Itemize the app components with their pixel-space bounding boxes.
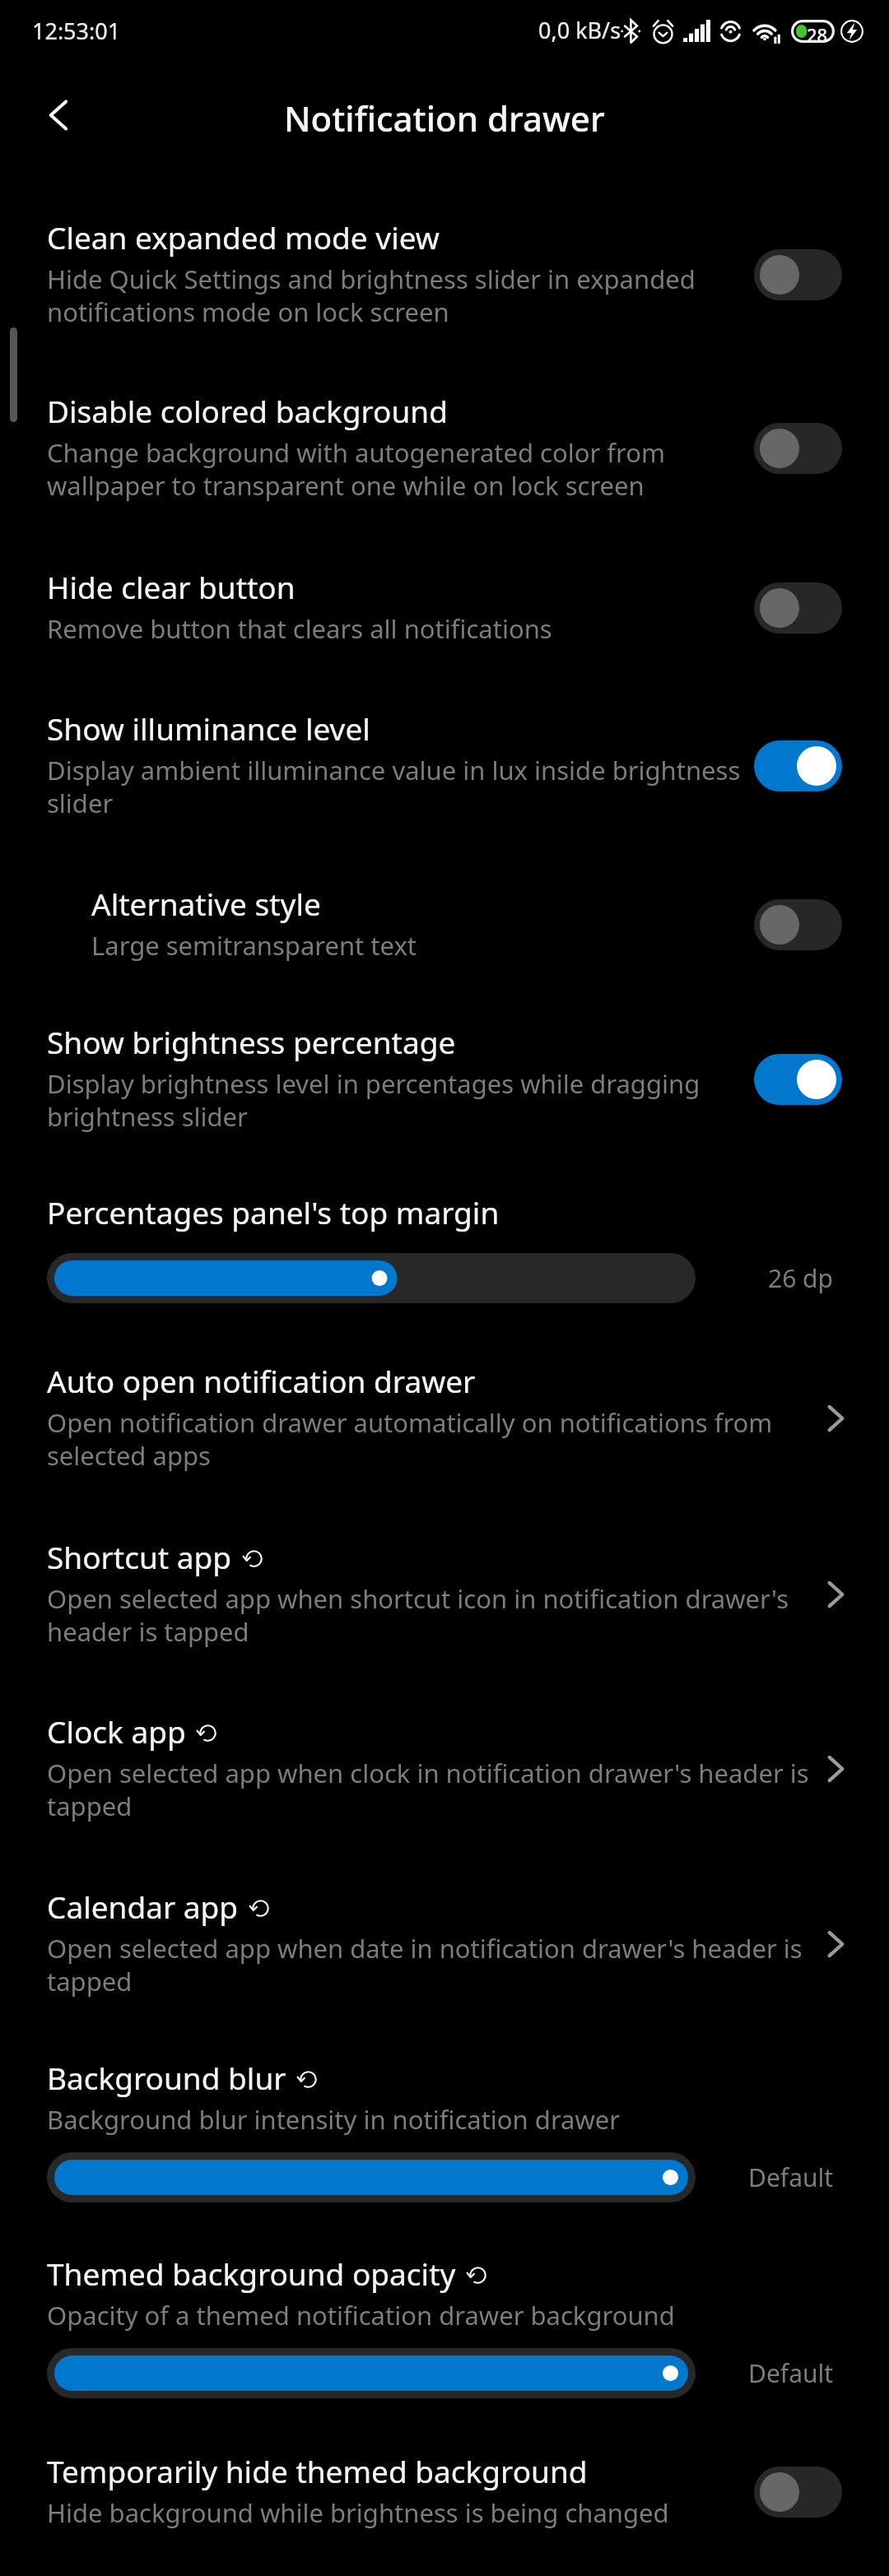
button[interactable]: Off [754, 423, 842, 474]
staticText: Alternative style [91, 887, 321, 923]
staticText: Auto open notification drawer [47, 1364, 476, 1400]
button[interactable]: On [754, 1054, 842, 1105]
staticText: Disable colored background [47, 394, 448, 430]
staticText: Notification drawer [284, 95, 605, 142]
button[interactable]: Temporarily hide themed background [0, 2422, 889, 2564]
staticText: Themed background opacity [47, 2257, 456, 2293]
staticText: Calendar app [47, 1890, 239, 1926]
button[interactable]: Background blur [47, 2152, 696, 2202]
button[interactable]: Shortcut app [0, 1508, 889, 1683]
button[interactable]: Percentages panel's top margin [47, 1253, 696, 1303]
button[interactable]: Off [754, 2467, 842, 2518]
staticText: Shortcut app [47, 1540, 232, 1576]
button[interactable]: Alternative style [0, 855, 889, 993]
staticText: Display brightness level in percentages … [47, 1068, 747, 1134]
staticText: 12:53:01 [32, 16, 121, 46]
button[interactable]: Themed background opacity [47, 2348, 696, 2398]
staticText: Background blur intensity in notificatio… [47, 2104, 621, 2137]
staticText: Remove button that clears all notificati… [47, 613, 552, 646]
other: Auto open notification drawer [822, 1400, 849, 1437]
staticText: Opacity of a themed notification drawer … [47, 2300, 675, 2332]
staticText: 0,0 kB/s [538, 15, 621, 45]
staticText: Show brightness percentage [47, 1025, 456, 1061]
staticText: Open selected app when shortcut icon in … [47, 1583, 829, 1649]
staticText: Hide background while brightness is bein… [47, 2497, 669, 2530]
staticText: Large semitransparent text [91, 930, 417, 963]
staticText: Clean expanded mode view [47, 220, 440, 257]
other: Shortcut app [822, 1576, 849, 1613]
staticText: Open selected app when date in notificat… [47, 1933, 829, 1998]
staticText: Change background with autogenerated col… [47, 437, 747, 503]
staticText: Temporarily hide themed background [47, 2454, 588, 2490]
staticText: Default [748, 2356, 834, 2390]
staticText: Open selected app when clock in notifica… [47, 1757, 829, 1823]
staticText: Clock app [47, 1715, 186, 1751]
staticText: 26 dp [768, 1261, 834, 1295]
staticText: Default [748, 2161, 834, 2194]
button[interactable]: Hide clear button [0, 538, 889, 680]
staticText: 28 [807, 22, 828, 47]
button[interactable]: Clean expanded mode view [0, 188, 889, 362]
staticText: Display ambient illuminance value in lux… [47, 754, 747, 820]
other: Calendar app [822, 1926, 849, 1962]
other: Clock app [822, 1751, 849, 1787]
staticText: Hide clear button [47, 570, 296, 606]
staticText: Show illuminance level [47, 712, 370, 748]
button[interactable]: Auto open notification drawer [0, 1332, 889, 1508]
staticText: Hide Quick Settings and brightness slide… [47, 263, 747, 329]
button[interactable]: Back [26, 84, 89, 146]
staticText: Open notification drawer automatically o… [47, 1407, 829, 1473]
button[interactable]: Show brightness percentage [0, 993, 889, 1163]
button[interactable]: Disable colored background [0, 362, 889, 538]
button[interactable]: Off [754, 899, 842, 950]
button[interactable]: Off [754, 583, 842, 634]
button[interactable]: Clock app [0, 1683, 889, 1858]
button[interactable]: On [754, 740, 842, 791]
staticText: Background blur [47, 2061, 286, 2097]
button[interactable]: Show illuminance level [0, 680, 889, 855]
button[interactable]: Calendar app [0, 1858, 889, 2029]
button[interactable]: Off [754, 249, 842, 300]
staticText: Percentages panel's top margin [47, 1195, 500, 1232]
